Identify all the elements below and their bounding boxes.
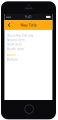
button[interactable]: Second item [7, 38, 50, 42]
button[interactable]: Third item [7, 42, 50, 47]
staticText: Second item [7, 38, 24, 42]
staticText: This is the first row [7, 34, 33, 37]
staticText: ●●●●● [6, 16, 11, 18]
staticText: Fourth item [7, 47, 23, 51]
staticText: 9:41 [25, 15, 32, 19]
staticText: Nav Title [20, 22, 36, 28]
staticText: Third item [7, 43, 21, 46]
button[interactable]: Back [4, 20, 12, 30]
button[interactable]: Action [7, 52, 50, 57]
button[interactable]: This is the first row [7, 33, 50, 38]
staticText: Bottom [7, 58, 17, 61]
button[interactable]: Fourth item [7, 47, 50, 52]
button[interactable]: Bottom [7, 57, 50, 62]
staticText: Action [7, 53, 16, 56]
